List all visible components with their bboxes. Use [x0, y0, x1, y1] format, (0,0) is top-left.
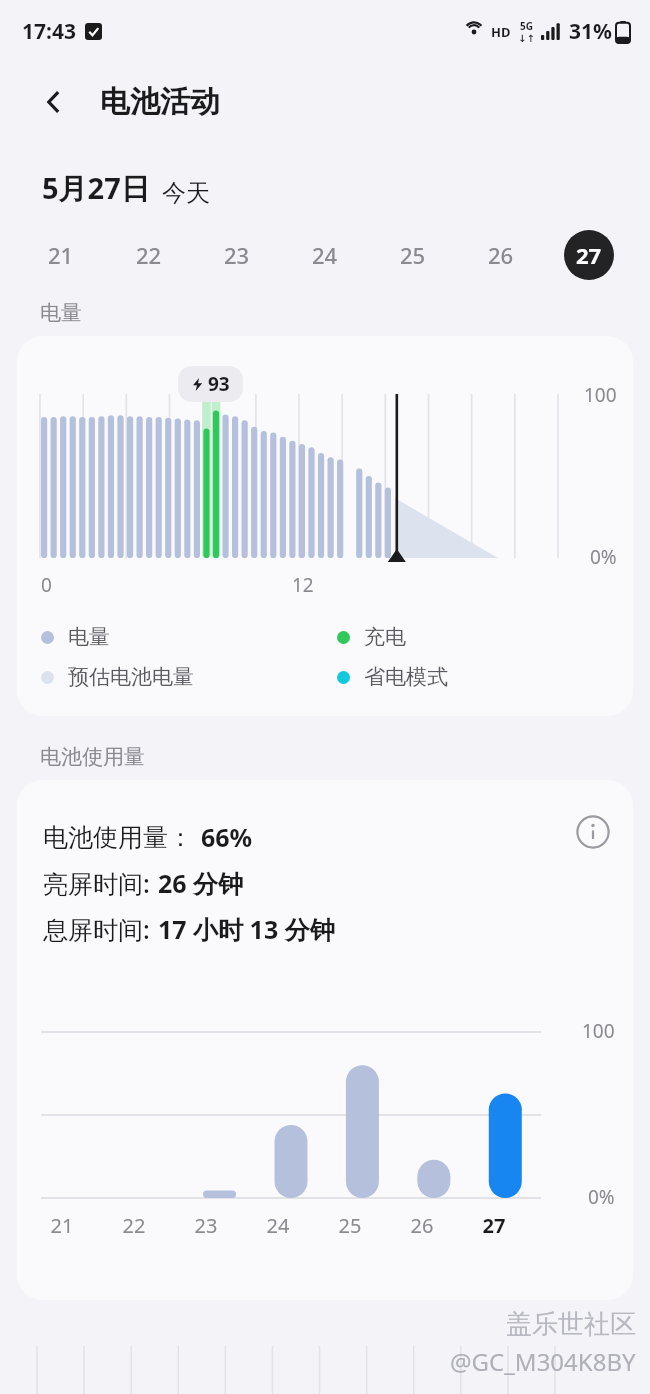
button[interactable]: 26 — [476, 230, 526, 280]
staticText: 电量 — [40, 300, 82, 326]
staticText: 电池使用量： — [43, 822, 193, 853]
button[interactable]: 100 — [17, 336, 633, 716]
staticText: 预估电池电量 — [68, 664, 194, 690]
button[interactable]: 24 — [300, 230, 350, 280]
button[interactable]: Back — [30, 78, 78, 126]
button[interactable]: 22 — [124, 230, 174, 280]
button[interactable]: Info — [569, 808, 617, 856]
staticText: 17:43 — [22, 17, 76, 46]
staticText: 31% — [569, 17, 612, 46]
staticText: 5月27日 — [42, 168, 150, 208]
staticText: 26 分钟 — [158, 866, 244, 900]
staticText: 66% — [201, 820, 253, 854]
staticText: 26 — [399, 1212, 445, 1239]
staticText: 27 — [576, 240, 602, 270]
staticText: 21 — [39, 1212, 85, 1239]
staticText: 22 — [111, 1212, 157, 1239]
staticText: 电量 — [68, 624, 110, 650]
button[interactable]: 电池使用量： — [17, 780, 633, 1300]
button[interactable]: 23 — [212, 230, 262, 280]
staticText: 亮屏时间: — [43, 866, 150, 900]
staticText: 24 — [255, 1212, 301, 1239]
staticText: 今天 — [162, 178, 210, 208]
staticText: 0% — [590, 544, 617, 570]
staticText: 27 — [471, 1212, 517, 1239]
staticText: 24 — [312, 240, 338, 270]
staticText: 25 — [327, 1212, 373, 1239]
staticText: 息屏时间: — [43, 912, 150, 946]
staticText: HD — [491, 23, 511, 41]
staticText: 0% — [588, 1184, 615, 1210]
staticText: ↓↑ — [518, 33, 535, 45]
staticText: 23 — [224, 240, 250, 270]
staticText: 5G — [520, 19, 533, 33]
button[interactable]: 21 — [36, 230, 86, 280]
staticText: 0 — [41, 572, 52, 598]
staticText: 22 — [136, 240, 162, 270]
button[interactable]: 27 — [564, 230, 614, 280]
staticText: 省电模式 — [364, 664, 448, 690]
staticText: 电池使用量 — [40, 744, 145, 770]
staticText: 100 — [584, 382, 617, 408]
staticText: 盖乐世社区 — [506, 1308, 636, 1341]
staticText: 17 小时 13 分钟 — [158, 912, 335, 946]
staticText: 100 — [582, 1018, 615, 1044]
staticText: @GC_M304K8BY — [450, 1345, 636, 1378]
staticText: 12 — [292, 572, 314, 598]
staticText: 电池活动 — [100, 83, 220, 121]
staticText: 21 — [48, 240, 74, 270]
staticText: 26 — [488, 240, 514, 270]
staticText: 93 — [208, 371, 230, 397]
staticText: 25 — [400, 240, 426, 270]
staticText: 充电 — [364, 624, 406, 650]
staticText: 23 — [183, 1212, 229, 1239]
button[interactable]: 25 — [388, 230, 438, 280]
